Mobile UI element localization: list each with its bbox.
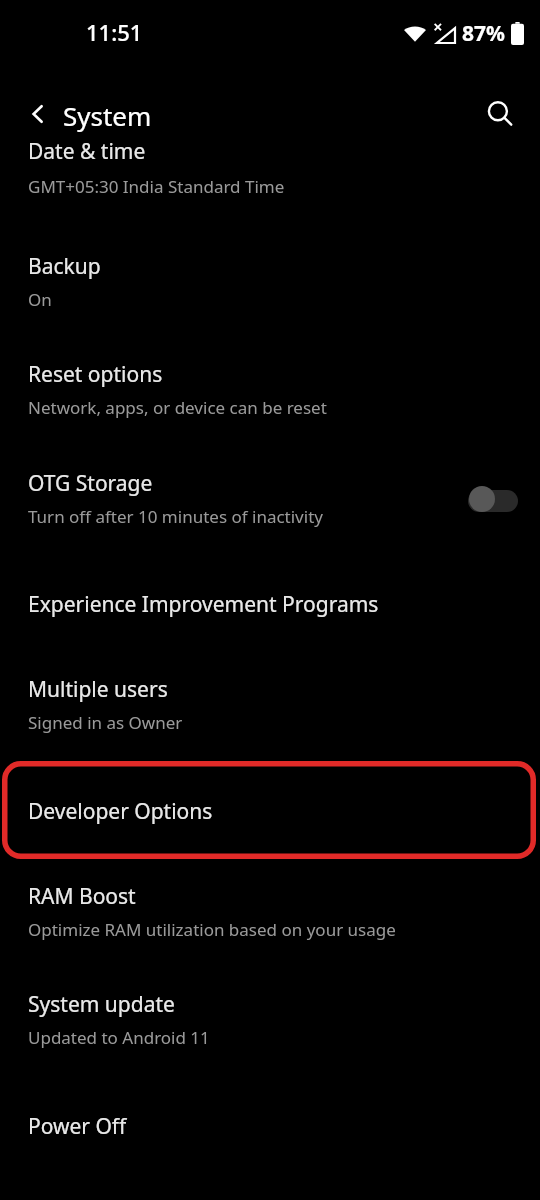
- button[interactable]: Multiple users: [0, 663, 540, 749]
- staticText: Date & time: [28, 137, 146, 166]
- staticText: Multiple users: [28, 675, 168, 704]
- staticText: 11:51: [86, 17, 143, 47]
- staticText: System update: [28, 990, 175, 1019]
- button[interactable]: Developer Options: [2, 761, 536, 859]
- staticText: Reset options: [28, 360, 163, 389]
- staticText: Signed in as Owner: [28, 711, 183, 734]
- button[interactable]: RAM Boost: [0, 870, 540, 956]
- button[interactable]: Experience Improvement Programs: [0, 580, 540, 628]
- button[interactable]: OTG Storage toggle, off: [468, 482, 522, 516]
- staticText: 87%: [462, 19, 505, 48]
- staticText: Experience Improvement Programs: [28, 590, 379, 619]
- staticText: Developer Options: [28, 797, 213, 826]
- staticText: GMT+05:30 India Standard Time: [28, 175, 285, 198]
- staticText: Power Off: [28, 1112, 127, 1141]
- staticText: OTG Storage: [28, 469, 153, 498]
- staticText: System: [63, 98, 152, 133]
- staticText: Network, apps, or device can be reset: [28, 396, 327, 419]
- staticText: On: [28, 288, 52, 311]
- button[interactable]: System update: [0, 978, 540, 1064]
- staticText: Optimize RAM utilization based on your u…: [28, 918, 396, 941]
- button[interactable]: Reset options: [0, 348, 540, 434]
- staticText: Updated to Android 11: [28, 1026, 210, 1049]
- button[interactable]: Search: [474, 88, 526, 140]
- button[interactable]: Back: [12, 88, 64, 140]
- button[interactable]: Date & time: [0, 151, 540, 217]
- staticText: Turn off after 10 minutes of inactivity: [28, 505, 323, 528]
- staticText: Backup: [28, 252, 101, 281]
- button[interactable]: Backup: [0, 240, 540, 326]
- button[interactable]: OTG Storage: [0, 457, 540, 543]
- button[interactable]: Power Off: [0, 1102, 540, 1150]
- staticText: RAM Boost: [28, 882, 136, 911]
